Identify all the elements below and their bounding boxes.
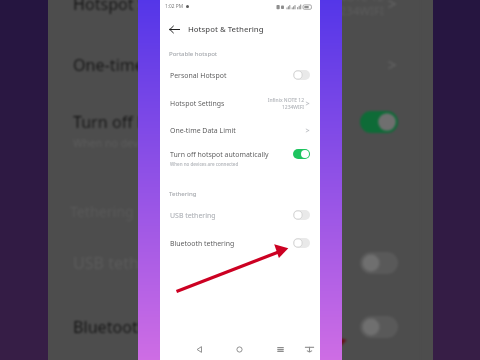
- button[interactable]: USB tethering: [49, 237, 420, 288]
- button[interactable]: One-time Data Limit: [49, 39, 420, 90]
- button[interactable]: Screenshot: [300, 338, 318, 360]
- staticText: Portable hotspot: [169, 49, 218, 57]
- staticText: Infinix NOTE 12 1234WIFI: [267, 97, 304, 110]
- button[interactable]: Switch on: [360, 111, 398, 133]
- button[interactable]: Personal Hotspot: [160, 64, 320, 86]
- staticText: Bluetooth tethering: [73, 316, 223, 338]
- button[interactable]: Switch off: [293, 210, 310, 220]
- button[interactable]: One-time Data Limit: [160, 119, 320, 141]
- button[interactable]: Switch on: [293, 149, 310, 159]
- button[interactable]: Switch off: [293, 70, 310, 80]
- button[interactable]: Back: [190, 338, 208, 360]
- button[interactable]: Switch off: [360, 252, 398, 274]
- staticText: 1:02 PM: [165, 3, 184, 10]
- staticText: Bluetooth tethering: [170, 239, 235, 248]
- button[interactable]: Bluetooth tethering: [49, 301, 420, 352]
- staticText: When no devices are connected: [73, 136, 232, 151]
- staticText: Hotspot Settings: [170, 99, 225, 108]
- staticText: Tethering: [169, 189, 197, 197]
- staticText: Turn off hotspot automatically: [73, 111, 302, 133]
- staticText: USB tethering: [170, 211, 216, 220]
- button[interactable]: Turn off hotspot automatically: [49, 96, 420, 147]
- button[interactable]: Home: [230, 338, 248, 360]
- staticText: Infinix NOTE 12 1234WIFI: [299, 0, 384, 18]
- button[interactable]: Back: [166, 21, 183, 37]
- button[interactable]: Bluetooth tethering: [160, 232, 320, 254]
- staticText: Turn off hotspot automatically: [170, 150, 269, 159]
- staticText: When no devices are connected: [170, 161, 239, 167]
- button[interactable]: Switch off: [293, 238, 310, 248]
- button[interactable]: Hotspot Settings: [49, 0, 420, 29]
- button[interactable]: Recent apps: [271, 338, 289, 360]
- staticText: Hotspot Settings: [73, 0, 200, 15]
- button[interactable]: Hotspot Settings: [160, 92, 320, 114]
- staticText: Personal Hotspot: [170, 71, 227, 80]
- button[interactable]: Turn off hotspot automatically: [160, 143, 320, 165]
- button[interactable]: Switch off: [360, 316, 398, 338]
- staticText: One-time Data Limit: [73, 54, 226, 76]
- staticText: USB tethering: [73, 252, 179, 274]
- button[interactable]: USB tethering: [160, 204, 320, 226]
- staticText: Hotspot & Tethering: [188, 24, 264, 35]
- staticText: One-time Data Limit: [170, 126, 236, 135]
